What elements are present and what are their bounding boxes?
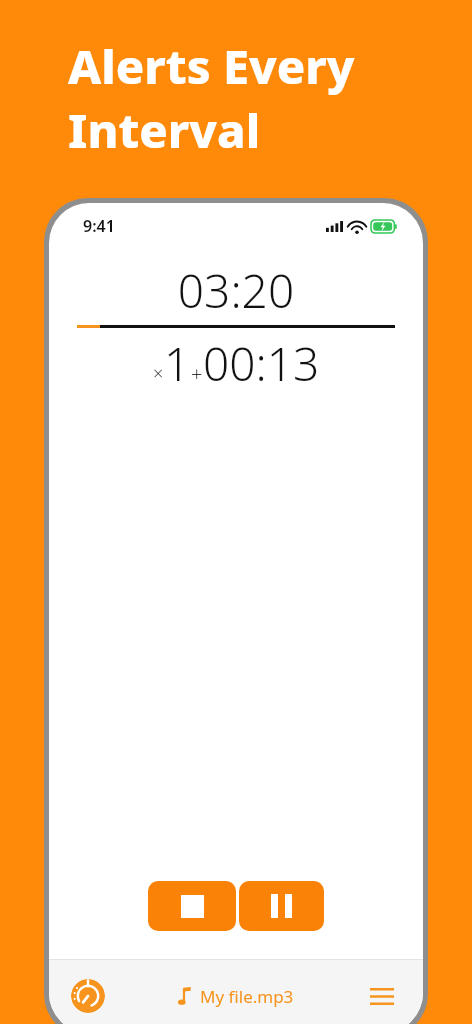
staticText: Interval (68, 98, 261, 162)
button[interactable]: Timer (71, 979, 105, 1013)
staticText: × (153, 361, 164, 386)
staticText: My file.mp3 (200, 985, 294, 1008)
button[interactable]: My file.mp3 (178, 985, 294, 1008)
staticText: 03:20 (77, 259, 395, 322)
button[interactable]: Stop (148, 881, 236, 931)
button[interactable]: Pause (239, 881, 324, 931)
staticText: 00:13 (203, 332, 320, 395)
staticText: 9:41 (83, 215, 115, 237)
staticText: + (191, 360, 203, 387)
button[interactable]: Menu (365, 979, 399, 1013)
staticText: 1 (164, 332, 191, 395)
staticText: Alerts Every (68, 34, 355, 98)
